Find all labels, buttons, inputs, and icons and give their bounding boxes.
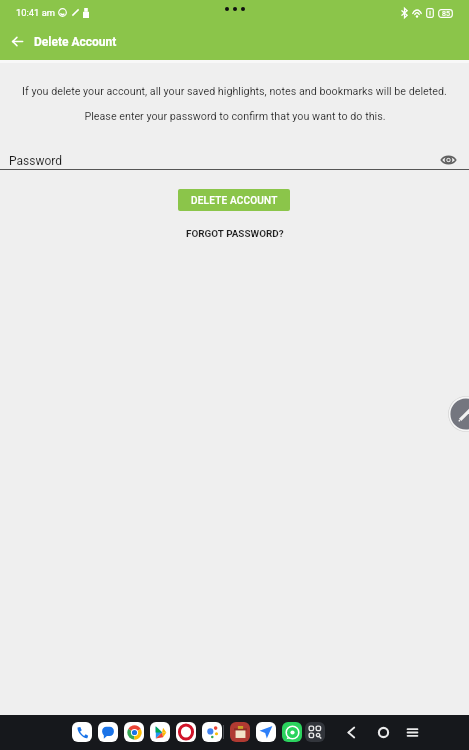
- staticText: 85: [442, 10, 450, 18]
- button[interactable]: Recent apps: [399, 719, 426, 746]
- button[interactable]: DELETE ACCOUNT: [178, 189, 290, 211]
- button[interactable]: [72, 722, 92, 742]
- button[interactable]: Edit: [447, 395, 469, 433]
- button[interactable]: Back: [5, 29, 29, 53]
- button[interactable]: Show password: [436, 150, 460, 170]
- staticText: FORGOT PASSWORD?: [186, 228, 284, 240]
- staticText: 10:41 am: [16, 7, 56, 18]
- button[interactable]: FORGOT PASSWORD?: [176, 224, 294, 244]
- button[interactable]: [176, 722, 196, 742]
- staticText: DELETE ACCOUNT: [191, 195, 278, 207]
- staticText: Please enter your password to confirm th…: [84, 110, 386, 123]
- button[interactable]: [256, 722, 276, 742]
- button[interactable]: [124, 722, 144, 742]
- button[interactable]: [202, 722, 222, 742]
- button[interactable]: Back: [338, 719, 365, 746]
- button[interactable]: [230, 722, 250, 742]
- button[interactable]: Home: [370, 719, 397, 746]
- staticText: Password: [9, 154, 63, 168]
- button[interactable]: [150, 722, 170, 742]
- button[interactable]: [98, 722, 118, 742]
- button[interactable]: [282, 722, 302, 742]
- staticText: If you delete your account, all your sav…: [22, 85, 447, 98]
- staticText: Delete Account: [34, 35, 117, 49]
- button[interactable]: [305, 722, 325, 742]
